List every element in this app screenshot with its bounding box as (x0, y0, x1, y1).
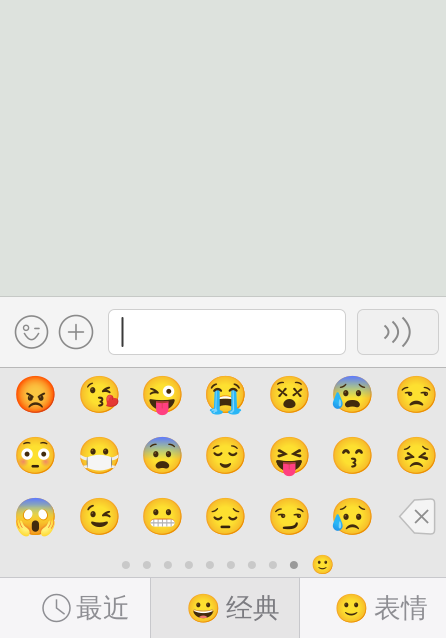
button[interactable]: 😡 (4, 364, 67, 425)
button[interactable]: 😝 (258, 425, 321, 486)
staticText: 😌 (203, 435, 248, 476)
button[interactable]: 😜 (131, 364, 194, 425)
button[interactable]: 😬 (131, 486, 194, 547)
button[interactable]: 😵 (258, 364, 321, 425)
staticText: 🙂 (334, 592, 369, 624)
staticText: 😬 (140, 496, 185, 537)
button[interactable]: 😒 (384, 364, 446, 425)
button[interactable]: 😙 (321, 425, 384, 486)
staticText: 经典 (226, 592, 280, 624)
staticText: 😀 (186, 592, 221, 624)
staticText: 😙 (330, 435, 375, 476)
button[interactable]: 😷 (67, 425, 131, 486)
staticText: 😉 (77, 496, 122, 537)
staticText: 😣 (394, 435, 439, 476)
staticText: 😵 (267, 374, 312, 415)
button[interactable]: Voice input (357, 297, 438, 367)
button[interactable]: 😨 (131, 425, 194, 486)
staticText: 😭 (203, 374, 248, 415)
button[interactable]: Delete (384, 486, 446, 547)
staticText: 😡 (13, 374, 58, 415)
button[interactable]: More (59, 297, 92, 367)
button[interactable] (108, 297, 345, 367)
staticText: 😱 (13, 496, 58, 537)
staticText: 😰 (330, 374, 375, 415)
staticText: 🙂 (311, 554, 334, 576)
staticText: 😒 (394, 374, 439, 415)
button[interactable]: 😳 (4, 425, 67, 486)
button[interactable]: 😉 (67, 486, 131, 547)
staticText: 😷 (77, 435, 122, 476)
staticText: 😜 (140, 374, 185, 415)
staticText: 😔 (203, 496, 248, 537)
staticText: 😘 (77, 374, 122, 415)
staticText: 😨 (140, 435, 185, 476)
button[interactable]: 最近 (0, 578, 150, 638)
staticText: 😥 (330, 496, 375, 537)
button[interactable]: 😏 (258, 486, 321, 547)
button[interactable]: 😱 (4, 486, 67, 547)
button[interactable]: 😌 (194, 425, 258, 486)
staticText: 😝 (267, 435, 312, 476)
button[interactable]: Emoji keyboard (15, 297, 47, 367)
staticText: 😏 (267, 496, 312, 537)
button[interactable]: 😣 (384, 425, 446, 486)
button[interactable]: 😭 (194, 364, 258, 425)
staticText: 😳 (13, 435, 58, 476)
button[interactable]: 🙂 (300, 578, 446, 638)
button[interactable]: 😘 (67, 364, 131, 425)
button[interactable]: 😥 (321, 486, 384, 547)
button[interactable]: 😀 (151, 578, 299, 638)
staticText: 表情 (374, 592, 428, 624)
button[interactable]: 😔 (194, 486, 258, 547)
button[interactable]: 😰 (321, 364, 384, 425)
staticText: 最近 (76, 592, 130, 624)
